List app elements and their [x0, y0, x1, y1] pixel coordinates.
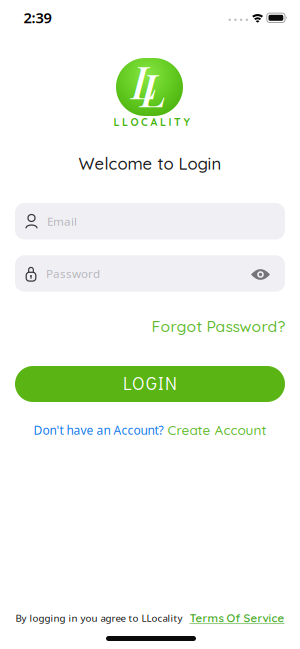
staticText: Password [46, 266, 100, 281]
staticText: Don't have an Account? [33, 422, 163, 438]
staticText: L [131, 52, 157, 110]
button[interactable]: Terms Of Service [189, 611, 284, 625]
staticText: Forgot Password? [151, 316, 285, 336]
staticText: LLOCALITY [113, 115, 189, 129]
staticText: By logging in you agree to LLocality [15, 611, 182, 625]
button[interactable]: Forgot Password? [151, 316, 285, 336]
button[interactable]: LOGIN [15, 366, 285, 402]
button[interactable]: Password [15, 255, 285, 292]
staticText: Welcome to Login [78, 153, 221, 174]
button[interactable]: Don't have an Account? [33, 421, 266, 438]
staticText: 2:39 [23, 7, 51, 27]
staticText: Terms Of Service [189, 611, 284, 625]
staticText: L [140, 60, 166, 118]
staticText: LOGIN [123, 371, 177, 395]
staticText: Email [47, 213, 77, 229]
staticText: Create Account [167, 421, 266, 438]
button[interactable]: Email [15, 203, 285, 239]
